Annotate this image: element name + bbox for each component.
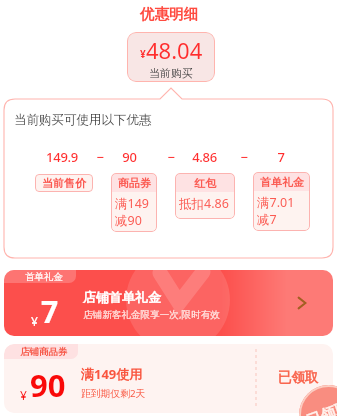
- staticText: 149.9: [46, 148, 78, 166]
- staticText: 已领取: [278, 369, 319, 386]
- staticText: −: [240, 148, 248, 166]
- staticText: 当前购买可使用以下优惠: [14, 112, 152, 128]
- staticText: 抵扣4.86: [179, 195, 229, 212]
- button[interactable]: 店铺商品券: [4, 344, 333, 413]
- staticText: 店铺商品券: [20, 346, 68, 358]
- staticText: 满149: [115, 195, 149, 212]
- staticText: 7: [41, 291, 59, 332]
- staticText: 首单礼金: [260, 175, 304, 189]
- staticText: ¥: [20, 387, 27, 403]
- staticText: 满7.01: [257, 194, 295, 211]
- staticText: −: [96, 148, 104, 166]
- staticText: 红包: [194, 176, 216, 190]
- staticText: 当前售价: [42, 176, 86, 190]
- staticText: 90: [122, 148, 137, 166]
- staticText: 当前购买: [149, 66, 193, 80]
- staticText: 商品券: [118, 176, 151, 190]
- button[interactable]: 查看详情: [279, 270, 333, 336]
- staticText: 店铺新客礼金限享一次,限时有效: [83, 308, 220, 321]
- staticText: 48.04: [146, 35, 203, 65]
- staticText: 减7: [257, 211, 277, 228]
- staticText: 满149使用: [81, 365, 143, 383]
- staticText: 优惠明细: [140, 5, 198, 23]
- button[interactable]: 当前售价: [35, 174, 93, 192]
- staticText: 减90: [115, 212, 142, 229]
- staticText: 距到期仅剩2天: [81, 387, 146, 400]
- button[interactable]: 首单礼金: [4, 270, 333, 336]
- button[interactable]: 首单礼金: [253, 172, 310, 231]
- button[interactable]: 商品券: [111, 173, 157, 232]
- staticText: ¥: [31, 313, 38, 329]
- staticText: 90: [30, 364, 66, 406]
- staticText: 已领取: [304, 398, 337, 416]
- staticText: ¥: [140, 47, 146, 61]
- button[interactable]: ¥: [127, 32, 215, 82]
- staticText: −: [167, 148, 175, 166]
- staticText: 店铺首单礼金: [83, 289, 161, 305]
- staticText: 7: [277, 148, 285, 166]
- staticText: 首单礼金: [25, 271, 63, 283]
- button[interactable]: 红包: [175, 173, 235, 219]
- staticText: 4.86: [192, 148, 217, 166]
